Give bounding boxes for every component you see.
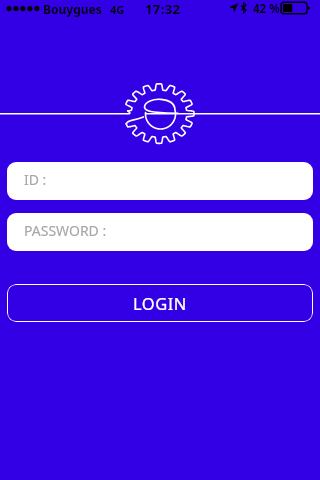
button[interactable]: PASSWORD : xyxy=(7,213,313,251)
staticText: 17:32 xyxy=(145,0,181,16)
staticText: 4G xyxy=(110,2,125,17)
staticText: PASSWORD : xyxy=(24,221,107,240)
button[interactable]: ID : xyxy=(7,162,313,200)
staticText: ID : xyxy=(24,170,47,189)
staticText: LOGIN xyxy=(133,292,187,314)
button[interactable]: LOGIN xyxy=(7,284,313,322)
staticText: 42 % xyxy=(253,1,280,17)
staticText: Bouygues xyxy=(43,1,102,17)
